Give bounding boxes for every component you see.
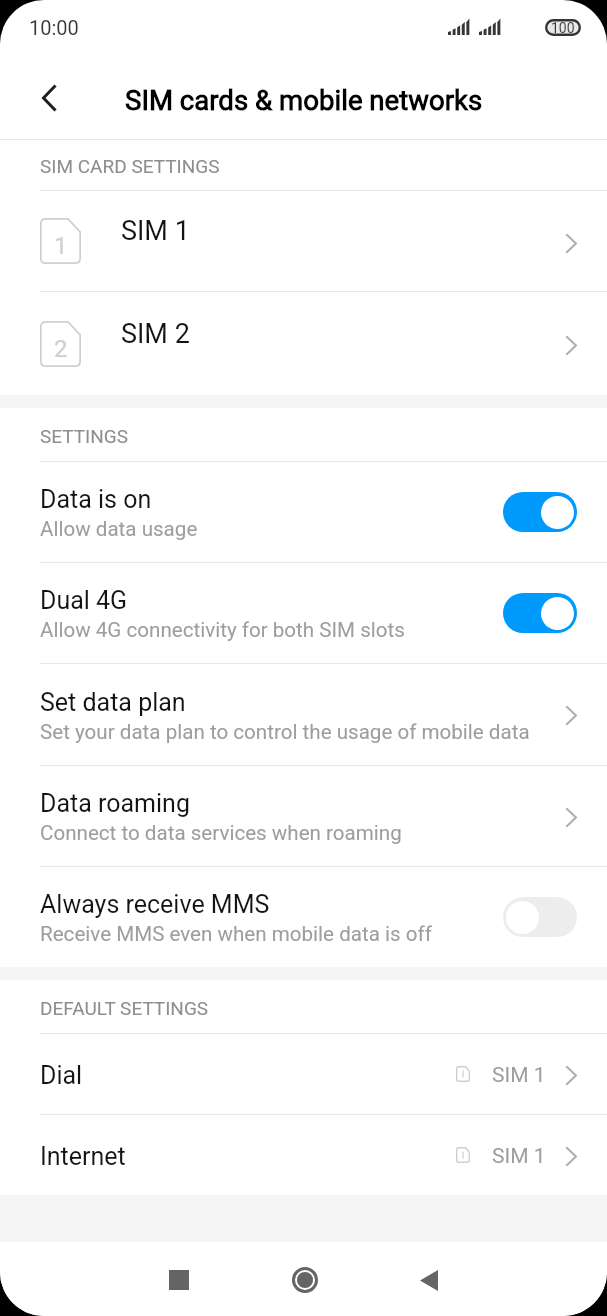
button[interactable]: Switch on <box>503 593 577 633</box>
staticText: Set your data plan to control the usage … <box>40 720 530 744</box>
staticText: Allow 4G connectivity for both SIM slots <box>40 618 405 642</box>
button[interactable]: Home <box>275 1250 335 1310</box>
button[interactable]: 1 <box>0 191 607 291</box>
staticText: Data roaming <box>40 789 190 818</box>
staticText: 2 <box>54 335 68 363</box>
staticText: SIM 1 <box>121 215 190 247</box>
button[interactable]: Data roaming <box>0 766 607 866</box>
button[interactable]: Switch off <box>503 897 577 937</box>
button[interactable]: Dual 4G <box>0 563 607 663</box>
button[interactable]: Back <box>399 1250 459 1310</box>
staticText: SIM 2 <box>121 318 190 350</box>
staticText: Data is on <box>40 485 152 514</box>
staticText: 1 <box>54 232 68 260</box>
staticText: 100 <box>551 20 575 36</box>
button[interactable]: Dial <box>0 1034 607 1114</box>
button[interactable]: Internet <box>0 1115 607 1195</box>
staticText: SIM CARD SETTINGS <box>40 155 220 177</box>
button[interactable]: Switch on <box>503 492 577 532</box>
staticText: 10:00 <box>29 16 79 39</box>
staticText: Dual 4G <box>40 586 128 615</box>
staticText: Set data plan <box>40 688 186 717</box>
staticText: Allow data usage <box>40 517 198 541</box>
staticText: Internet <box>40 1142 126 1171</box>
button[interactable]: 2 <box>0 292 607 395</box>
staticText: SIM 1 <box>492 1063 546 1088</box>
staticText: SETTINGS <box>40 425 129 447</box>
staticText: Always receive MMS <box>40 890 270 919</box>
staticText: Connect to data services when roaming <box>40 821 402 845</box>
staticText: Dial <box>40 1061 83 1090</box>
staticText: SIM cards & mobile networks <box>125 84 483 116</box>
button[interactable]: Recents <box>149 1250 209 1310</box>
button[interactable]: Back <box>25 74 73 122</box>
button[interactable]: Set data plan <box>0 664 607 765</box>
staticText: Receive MMS even when mobile data is off <box>40 922 432 946</box>
staticText: DEFAULT SETTINGS <box>40 997 209 1019</box>
button[interactable]: Data is on <box>0 462 607 562</box>
button[interactable]: Always receive MMS <box>0 867 607 967</box>
staticText: SIM 1 <box>492 1144 546 1169</box>
